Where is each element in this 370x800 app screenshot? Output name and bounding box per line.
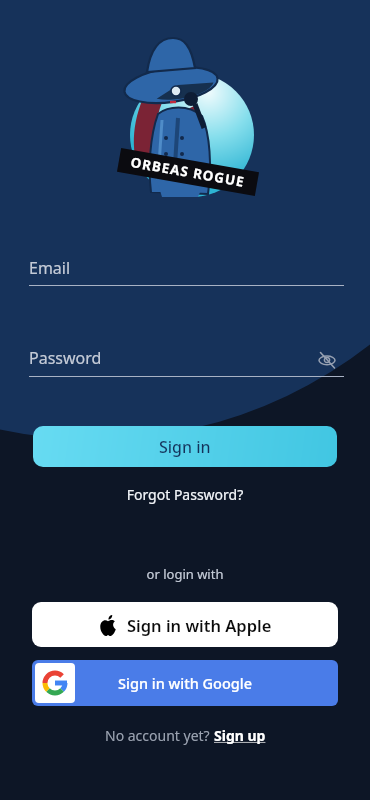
staticText: Sign in with Google <box>118 673 253 693</box>
staticText: Email <box>29 257 71 279</box>
button[interactable]: Sign in with Google <box>32 660 338 706</box>
staticText: or login with <box>0 565 370 583</box>
staticText: No account yet? <box>105 726 214 745</box>
staticText: Sign in with Apple <box>127 614 272 636</box>
button[interactable]: Sign up <box>214 726 266 745</box>
button[interactable]: Sign in with Apple <box>32 602 338 647</box>
staticText: ORBEAS ROGUE <box>129 153 247 191</box>
button[interactable]: Sign in <box>33 426 337 467</box>
button[interactable]: Forgot Password? <box>0 485 370 504</box>
staticText: Password <box>29 347 102 369</box>
staticText: Sign in <box>159 436 211 458</box>
